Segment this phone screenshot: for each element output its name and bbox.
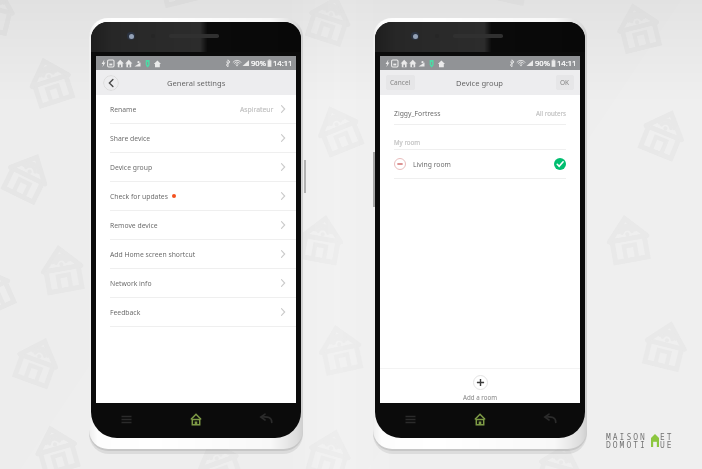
staticText: Living room [413, 160, 451, 169]
button[interactable]: Living room [380, 150, 580, 178]
staticText: UE [660, 439, 674, 450]
button[interactable]: Back [231, 402, 301, 436]
staticText: MAISON [606, 431, 647, 442]
button[interactable]: Rename [96, 95, 296, 124]
button[interactable]: Home [445, 402, 515, 436]
button[interactable]: Back [103, 75, 119, 91]
staticText: Check for updates [110, 192, 168, 201]
staticText: Remove device [110, 221, 158, 230]
staticText: Network info [110, 279, 152, 288]
staticText: 90% [251, 58, 266, 68]
staticText: Rename [110, 105, 137, 114]
staticText: Add a room [463, 393, 497, 401]
staticText: Cancel [390, 78, 411, 87]
staticText: Share device [110, 134, 151, 143]
button[interactable]: Remove device [96, 211, 296, 240]
staticText: ET [660, 431, 674, 442]
staticText: 14:11 [557, 58, 577, 68]
staticText: Feedback [110, 308, 141, 317]
button[interactable]: Share device [96, 124, 296, 153]
button[interactable]: Device group [96, 153, 296, 182]
staticText: My room [394, 138, 421, 146]
button[interactable]: Ziggy_Fortress [380, 102, 580, 124]
staticText: Aspirateur [240, 105, 274, 114]
staticText: OK [560, 78, 570, 87]
button[interactable]: Check for updates [96, 182, 296, 211]
staticText: All routers [536, 109, 566, 117]
button[interactable]: Add Home screen shortcut [96, 240, 296, 269]
staticText: Ziggy_Fortress [394, 109, 441, 118]
button[interactable]: Recent apps [91, 402, 161, 436]
button[interactable]: Network info [96, 269, 296, 298]
staticText: DOMOTI [606, 439, 647, 450]
button[interactable]: Home [161, 402, 231, 436]
staticText: 90% [535, 58, 550, 68]
button[interactable]: Cancel [386, 75, 415, 90]
button[interactable]: Recent apps [375, 402, 445, 436]
button[interactable]: Feedback [96, 298, 296, 327]
staticText: General settings [167, 78, 226, 88]
staticText: Add Home screen shortcut [110, 250, 196, 259]
staticText: Device group [456, 78, 504, 88]
staticText: 14:11 [273, 58, 293, 68]
button[interactable]: Add a room [380, 369, 580, 403]
button[interactable]: Back [515, 402, 585, 436]
button[interactable]: OK [556, 75, 574, 90]
staticText: Device group [110, 163, 153, 172]
